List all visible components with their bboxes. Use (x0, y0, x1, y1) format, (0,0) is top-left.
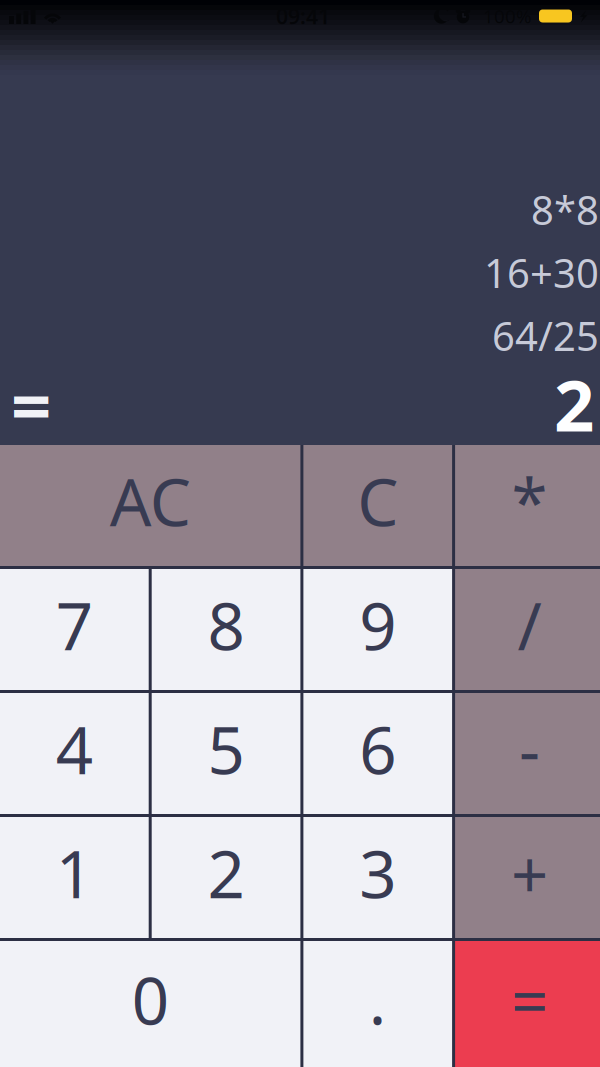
staticText: 6 (359, 706, 396, 792)
staticText: 8*8 (531, 183, 599, 236)
button[interactable]: 7 (0, 569, 149, 690)
staticText: 3 (359, 830, 396, 916)
button[interactable]: + (455, 817, 600, 938)
staticText: 9 (359, 582, 396, 668)
button[interactable]: 5 (152, 693, 300, 814)
button[interactable]: 4 (0, 693, 149, 814)
staticText: 16+30 (484, 246, 599, 299)
staticText: 7 (56, 582, 93, 668)
staticText: 2 (554, 357, 594, 451)
staticText: = (11, 357, 51, 451)
staticText: 09:41 (276, 2, 330, 30)
button[interactable]: = (455, 941, 600, 1067)
button[interactable]: * (455, 445, 600, 566)
button[interactable]: AC (0, 445, 300, 566)
button[interactable]: 0 (0, 941, 300, 1067)
staticText: 100% (483, 4, 532, 28)
button[interactable]: C (303, 445, 452, 566)
button[interactable]: 3 (303, 817, 452, 938)
button[interactable]: 6 (303, 693, 452, 814)
staticText: - (519, 706, 540, 792)
button[interactable]: 2 (152, 817, 300, 938)
staticText: 2 (207, 830, 244, 916)
staticText: 0 (132, 956, 169, 1043)
staticText: + (511, 830, 548, 916)
staticText: / (517, 582, 541, 668)
button[interactable]: 8 (152, 569, 300, 690)
staticText: . (369, 956, 387, 1043)
staticText: * (511, 458, 547, 544)
staticText: 64/25 (492, 309, 599, 362)
button[interactable]: . (303, 941, 452, 1067)
staticText: 4 (56, 706, 93, 792)
staticText: AC (110, 458, 191, 544)
button[interactable]: - (455, 693, 600, 814)
staticText: 8 (207, 582, 244, 668)
button[interactable]: / (455, 569, 600, 690)
staticText: = (511, 956, 548, 1043)
staticText: C (357, 458, 398, 544)
staticText: 1 (56, 830, 93, 916)
button[interactable]: 9 (303, 569, 452, 690)
button[interactable]: 1 (0, 817, 149, 938)
staticText: 5 (207, 706, 244, 792)
